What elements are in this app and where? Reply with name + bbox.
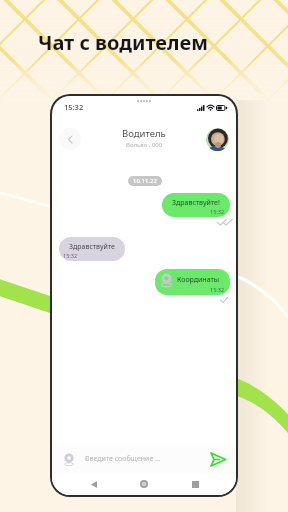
button[interactable]: Back <box>59 128 81 150</box>
staticText: Координаты <box>177 275 220 285</box>
button[interactable]: Здравствуйте! <box>162 193 230 217</box>
button[interactable]: Home <box>135 475 153 493</box>
staticText: 15:32 <box>64 102 84 112</box>
staticText: 15:32 <box>210 208 225 215</box>
staticText: Водитель <box>122 127 166 140</box>
button[interactable]: Recents <box>186 475 204 493</box>
button[interactable]: Send <box>209 450 227 468</box>
staticText: 15:32 <box>210 286 225 293</box>
staticText: Здравствуйте <box>69 242 115 252</box>
button[interactable]: Driver avatar <box>206 128 229 151</box>
button[interactable]: Здравствуйте <box>59 237 125 261</box>
button[interactable]: Back <box>85 475 103 493</box>
staticText: Чат с водителем <box>38 29 288 56</box>
button[interactable]: Attach location <box>61 451 77 467</box>
button[interactable]: Координаты <box>155 269 230 295</box>
staticText: Вольво , 000 <box>126 141 163 149</box>
staticText: Введите сообщение ... <box>85 454 209 464</box>
staticText: 15:32 <box>63 252 78 259</box>
staticText: 10.11.22 <box>133 177 157 185</box>
staticText: Здравствуйте! <box>172 198 220 208</box>
